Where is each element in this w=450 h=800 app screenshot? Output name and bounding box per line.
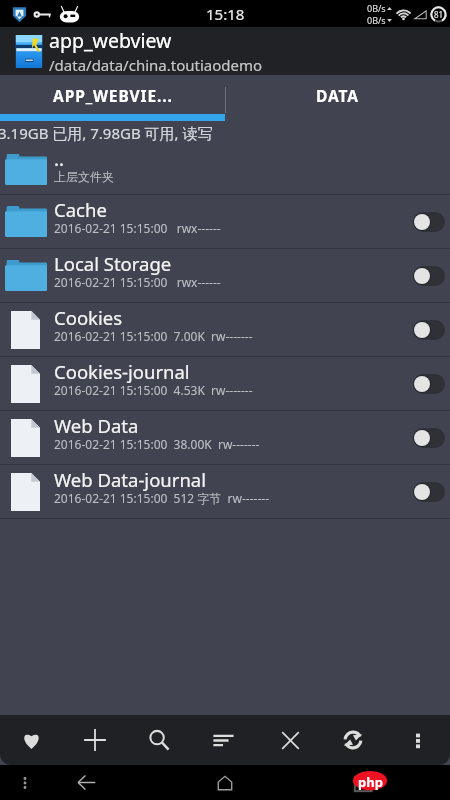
staticText: .. bbox=[54, 146, 64, 171]
staticText: /data/data/china.toutiaodemo bbox=[49, 55, 263, 75]
button[interactable]: app_webview bbox=[0, 27, 450, 75]
staticText: Web Data-journal bbox=[54, 467, 206, 492]
staticText: Cookies bbox=[54, 305, 123, 330]
staticText: 3.19GB 已用, 7.98GB 可用, 读写 bbox=[0, 123, 213, 143]
staticText: 上层文件夹 bbox=[54, 169, 114, 184]
staticText: 2016-02-21 15:15:00 rwx------ bbox=[54, 274, 221, 290]
staticText: 2016-02-21 15:15:00 512 字节 rw------- bbox=[54, 490, 270, 506]
staticText: 2016-02-21 15:15:00 38.00K rw------- bbox=[54, 436, 260, 452]
button[interactable]: Toggle bbox=[408, 470, 450, 514]
button[interactable]: Bookmarks bbox=[8, 715, 54, 765]
staticText: app_webview bbox=[49, 27, 172, 54]
button[interactable]: New bbox=[72, 715, 118, 765]
staticText: 2016-02-21 15:15:00 7.00K rw------- bbox=[54, 328, 253, 344]
staticText: APP_WEBVIE... bbox=[53, 85, 173, 106]
staticText: 2016-02-21 15:15:00 4.53K rw------- bbox=[54, 382, 253, 398]
button[interactable]: Local Storage bbox=[0, 249, 450, 302]
button[interactable]: Refresh bbox=[330, 715, 376, 765]
button[interactable]: Web Data-journal bbox=[0, 465, 450, 518]
button[interactable]: Cookies bbox=[0, 303, 450, 356]
button[interactable]: Sort bbox=[200, 715, 246, 765]
staticText: Cache bbox=[54, 197, 107, 222]
button[interactable]: Back bbox=[68, 765, 104, 800]
button[interactable]: More options bbox=[395, 715, 441, 765]
button[interactable]: APP_WEBVIE... bbox=[0, 75, 225, 121]
staticText: DATA bbox=[316, 85, 359, 106]
staticText: 2016-02-21 15:15:00 rwx------ bbox=[54, 220, 221, 236]
staticText: Web Data bbox=[54, 413, 139, 438]
button[interactable]: Toggle bbox=[408, 254, 450, 298]
button[interactable]: Home bbox=[207, 765, 243, 800]
button[interactable]: Menu bbox=[10, 768, 40, 798]
button[interactable]: Toggle bbox=[408, 362, 450, 406]
staticText: Local Storage bbox=[54, 251, 172, 276]
button[interactable]: Close bbox=[267, 715, 313, 765]
button[interactable]: .. bbox=[0, 145, 450, 194]
staticText: 0B/s bbox=[367, 14, 386, 26]
button[interactable]: Cache bbox=[0, 195, 450, 248]
button[interactable]: DATA bbox=[225, 75, 450, 121]
staticText: 15:18 bbox=[206, 4, 245, 24]
button[interactable]: Toggle bbox=[408, 200, 450, 244]
staticText: php bbox=[358, 773, 383, 791]
button[interactable]: Web Data bbox=[0, 411, 450, 464]
button[interactable]: Toggle bbox=[408, 308, 450, 352]
button[interactable]: Cookies-journal bbox=[0, 357, 450, 410]
staticText: 81 bbox=[434, 9, 444, 20]
staticText: Cookies-journal bbox=[54, 359, 190, 384]
staticText: 0B/s bbox=[367, 2, 386, 14]
button[interactable]: Search bbox=[136, 715, 182, 765]
button[interactable]: Toggle bbox=[408, 416, 450, 460]
